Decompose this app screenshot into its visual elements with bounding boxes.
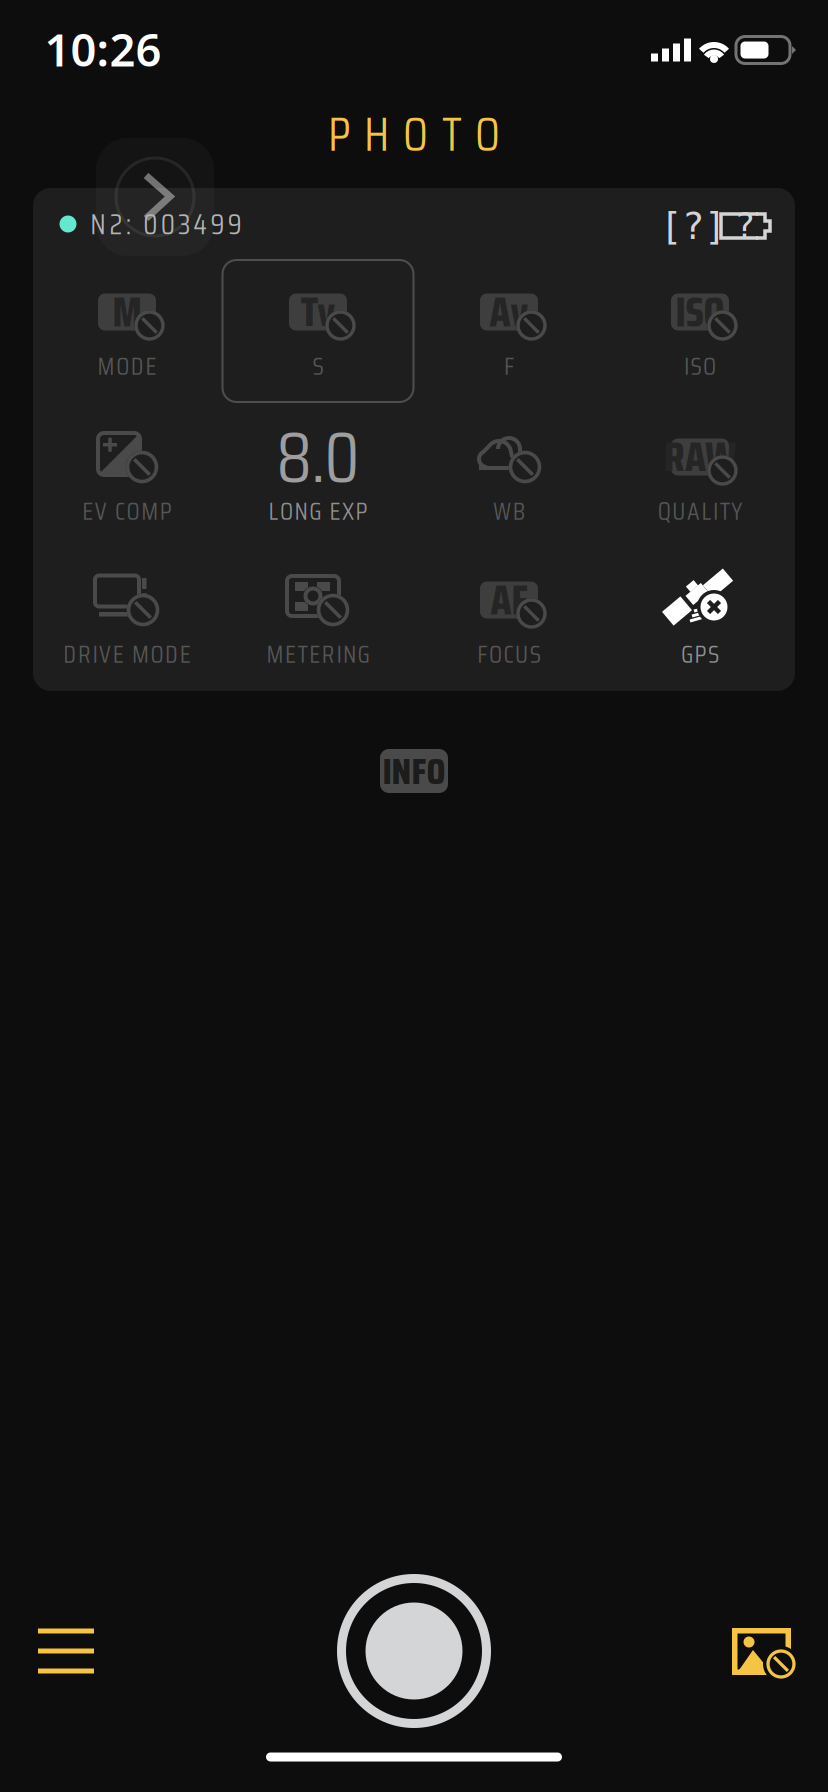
button[interactable]: Shutter [330,1567,498,1735]
button[interactable]: ISO [605,259,795,403]
staticText: AF [490,567,527,633]
staticText: MODE [98,346,156,386]
button[interactable]: Collapse [96,138,214,256]
staticText: FOCUS [477,634,541,674]
button[interactable]: AF [414,547,604,691]
staticText: DRIVE MODE [63,634,191,674]
button[interactable]: M [32,259,222,403]
staticText: METERING [266,634,370,674]
staticText: RAW [664,424,736,490]
button[interactable]: Tv [223,259,413,403]
staticText: F [504,346,514,386]
staticText: ? [734,206,755,246]
staticText: QUALITY [658,491,742,531]
button[interactable]: WB [414,404,604,548]
button[interactable]: RAW [605,404,795,548]
staticText: 10:26 [44,19,161,79]
staticText: INFO [382,742,445,800]
button[interactable]: METERING [223,547,413,691]
button[interactable]: Menu [6,1596,126,1706]
staticText: ISO [684,346,716,386]
button[interactable]: DRIVE MODE [32,547,222,691]
staticText: 8.0 [276,400,359,514]
staticText: ISO [675,279,724,345]
staticText: N2: 003499 [90,201,242,247]
staticText: Tv [300,279,335,345]
staticText: M [112,279,141,345]
staticText: EV COMP [82,491,172,531]
button[interactable]: Av [414,259,604,403]
staticText: LONG EXP [268,491,368,531]
button[interactable]: GPS [605,547,795,691]
staticText: PHOTO [328,96,500,172]
staticText: Av [489,279,528,345]
button[interactable]: 8.0 [223,404,413,548]
staticText: WB [493,491,525,531]
button[interactable]: INFO [380,749,448,793]
button[interactable]: Gallery [701,1597,821,1707]
staticText: S [312,346,323,386]
staticText: [?] [660,204,726,248]
staticText: GPS [681,634,719,674]
button[interactable]: EV COMP [32,404,222,548]
